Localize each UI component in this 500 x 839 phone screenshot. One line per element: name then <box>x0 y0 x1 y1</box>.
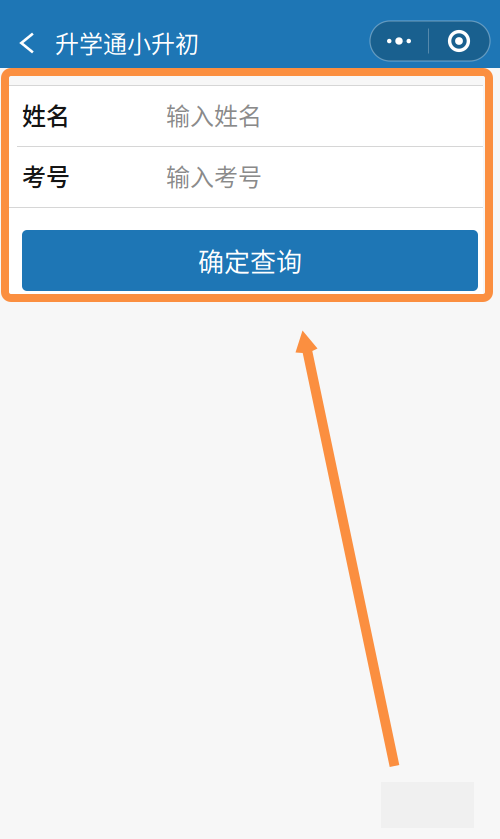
button[interactable]: 姓名 <box>9 86 483 146</box>
staticText: 考号 <box>22 158 70 193</box>
button[interactable]: Close mini program <box>428 21 490 61</box>
button[interactable]: 确定查询 <box>9 208 483 295</box>
staticText: 升学通小升初 <box>55 25 199 60</box>
button[interactable]: 考号 <box>9 147 483 207</box>
staticText: 输入姓名 <box>166 97 262 132</box>
button[interactable]: More <box>370 21 428 61</box>
button[interactable]: Back <box>9 21 45 65</box>
staticText: 姓名 <box>22 97 70 132</box>
staticText: 输入考号 <box>166 158 262 193</box>
staticText: 确定查询 <box>198 242 302 279</box>
